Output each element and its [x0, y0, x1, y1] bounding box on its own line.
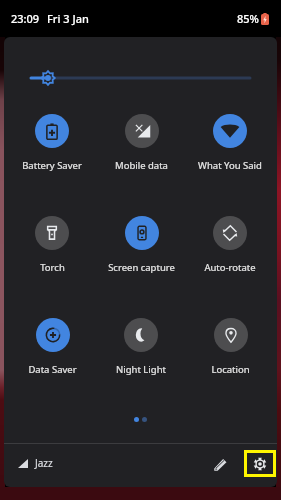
- staticText: Location: [211, 363, 250, 376]
- staticText: Torch: [40, 261, 65, 274]
- button[interactable]: What You Said: [186, 114, 274, 174]
- staticText: 85%: [237, 11, 259, 26]
- button[interactable]: Battery Saver: [8, 114, 96, 174]
- button[interactable]: Mobile data: [97, 114, 185, 174]
- staticText: Night Light: [116, 363, 166, 376]
- button[interactable]: Data Saver: [8, 318, 96, 378]
- button[interactable]: Screen capture: [97, 216, 185, 276]
- staticText: 23:09: [11, 11, 40, 26]
- staticText: Jazz: [35, 456, 53, 470]
- staticText: What You Said: [198, 159, 262, 172]
- button[interactable]: Torch: [8, 216, 96, 276]
- button[interactable]: Night Light: [97, 318, 185, 378]
- button[interactable]: Brightness: [20, 64, 261, 92]
- staticText: Data Saver: [28, 363, 77, 376]
- button[interactable]: Settings: [247, 453, 273, 474]
- button[interactable]: Jazz: [18, 456, 53, 470]
- button[interactable]: Location: [186, 318, 274, 378]
- staticText: Battery Saver: [22, 159, 82, 172]
- staticText: Mobile data: [115, 159, 168, 172]
- staticText: Auto-rotate: [204, 261, 256, 274]
- button[interactable]: Edit tiles: [207, 451, 233, 477]
- staticText: Fri 3 Jan: [47, 11, 89, 26]
- button[interactable]: Auto-rotate: [186, 216, 274, 276]
- staticText: Screen capture: [108, 261, 175, 274]
